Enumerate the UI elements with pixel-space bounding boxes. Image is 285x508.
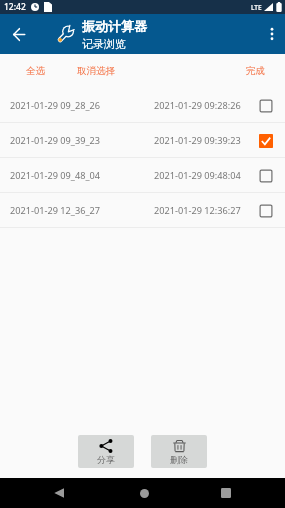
staticText: 2021-01-29 09_28_26 xyxy=(10,99,101,112)
button[interactable]: 2021-01-29 12_36_27 xyxy=(0,193,285,228)
staticText: 2021-01-29 09:28:26 xyxy=(154,99,241,112)
staticText: 振动计算器 xyxy=(82,18,147,34)
staticText: 12:42 xyxy=(4,1,26,13)
staticText: 删除 xyxy=(170,454,188,465)
button[interactable]: Recents xyxy=(211,478,241,508)
button[interactable]: 完成 xyxy=(246,65,265,77)
staticText: 完成 xyxy=(246,65,265,77)
button[interactable]: Back xyxy=(0,14,37,54)
staticText: 2021-01-29 09_48_04 xyxy=(10,169,101,182)
button[interactable]: More options xyxy=(258,14,285,54)
button[interactable]: 2021-01-29 09_48_04 xyxy=(0,158,285,193)
staticText: 2021-01-29 09_39_23 xyxy=(10,134,101,147)
staticText: 2021-01-29 09:48:04 xyxy=(154,169,241,182)
staticText: 取消选择 xyxy=(77,65,115,77)
button[interactable]: 2021-01-29 09_39_23 xyxy=(0,123,285,158)
staticText: 记录浏览 xyxy=(82,37,126,51)
button[interactable]: Back xyxy=(44,478,74,508)
staticText: 2021-01-29 12_36_27 xyxy=(10,204,101,217)
staticText: 全选 xyxy=(26,65,45,77)
button[interactable]: 删除 xyxy=(151,435,207,468)
button[interactable]: 2021-01-29 09_28_26 xyxy=(0,88,285,123)
button[interactable]: 全选 xyxy=(26,65,45,77)
button[interactable]: 分享 xyxy=(78,435,134,468)
staticText: 分享 xyxy=(97,454,115,465)
button[interactable]: Home xyxy=(129,478,159,508)
staticText: LTE xyxy=(251,3,262,12)
staticText: 2021-01-29 12:36:27 xyxy=(154,204,241,217)
staticText: 2021-01-29 09:39:23 xyxy=(154,134,241,147)
button[interactable]: 取消选择 xyxy=(77,65,115,77)
